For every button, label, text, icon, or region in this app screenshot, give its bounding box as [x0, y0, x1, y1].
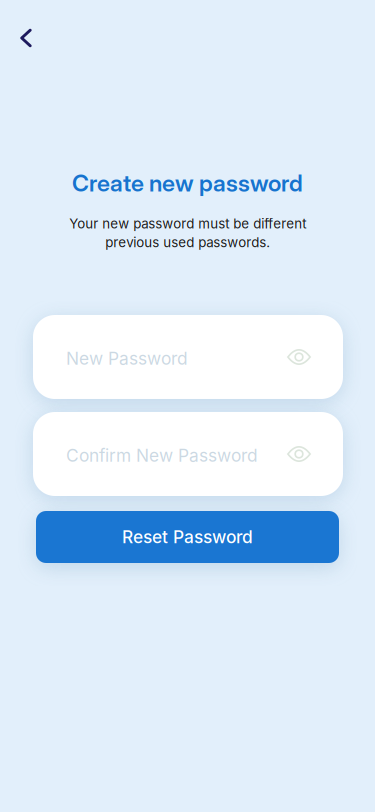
button[interactable]: Confirm New Password — [33, 412, 343, 496]
staticText: Confirm New Password — [66, 445, 258, 466]
staticText: Your new password must be different prev… — [69, 216, 306, 250]
button[interactable]: Reset Password — [36, 511, 339, 563]
button[interactable]: Show Confirm New Password — [277, 432, 321, 476]
button[interactable]: New Password — [33, 315, 343, 399]
button[interactable]: Show New Password — [277, 335, 321, 379]
button[interactable]: Back — [4, 16, 48, 60]
staticText: Reset Password — [122, 526, 253, 547]
staticText: New Password — [66, 348, 188, 369]
staticText: Create new password — [72, 169, 303, 197]
